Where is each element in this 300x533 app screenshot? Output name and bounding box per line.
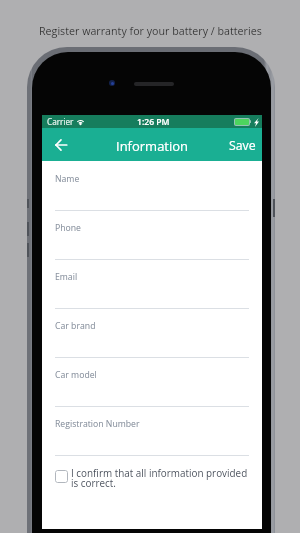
staticText: Phone: [55, 222, 81, 234]
button[interactable]: Registration Number: [42, 407, 262, 456]
staticText: Car model: [55, 369, 97, 381]
button[interactable]: Save: [221, 131, 262, 158]
staticText: 1:26 PM: [137, 116, 170, 128]
button[interactable]: Phone: [42, 211, 262, 260]
button[interactable]: Email: [42, 260, 262, 309]
staticText: Car brand: [55, 320, 96, 332]
staticText: Registration Number: [55, 418, 140, 430]
button[interactable]: Back: [50, 134, 72, 156]
button[interactable]: Car model: [42, 358, 262, 407]
button[interactable]: Name: [42, 161, 262, 211]
staticText: Email: [55, 271, 78, 283]
staticText: Information: [116, 137, 189, 155]
staticText: Register warranty for your battery / bat…: [39, 24, 262, 39]
staticText: Save: [229, 137, 256, 154]
button[interactable]: I confirm that all information provided …: [42, 456, 262, 492]
button[interactable]: Car brand: [42, 309, 262, 358]
staticText: I confirm that all information provided …: [71, 466, 250, 490]
staticText: Name: [55, 173, 80, 185]
staticText: Carrier: [47, 116, 74, 127]
